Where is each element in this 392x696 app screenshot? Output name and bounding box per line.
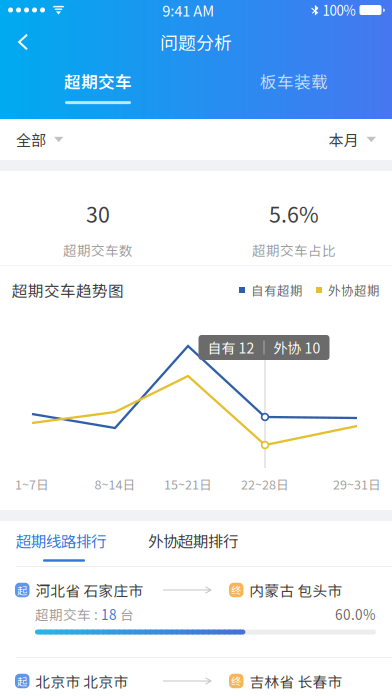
staticText: 22~28日: [241, 475, 289, 493]
staticText: 问题分析: [160, 29, 232, 55]
button[interactable]: 本月: [314, 119, 392, 160]
button[interactable]: 起: [0, 658, 392, 696]
staticText: 外协超期: [328, 281, 380, 299]
staticText: 起: [17, 674, 27, 688]
button[interactable]: Back: [0, 20, 46, 64]
staticText: 外协超期排行: [148, 529, 238, 552]
staticText: 吉林省 长春市: [249, 670, 342, 692]
staticText: 15~21日: [164, 475, 212, 493]
staticText: 起: [17, 583, 27, 597]
staticText: 超期交车: [64, 69, 132, 93]
staticText: 5.6%: [269, 198, 319, 229]
button[interactable]: 外协超期排行: [148, 521, 238, 566]
staticText: 终: [231, 583, 241, 597]
staticText: :: [91, 604, 101, 624]
button[interactable]: 板车装载: [196, 64, 392, 119]
button[interactable]: 超期线路排行: [16, 521, 106, 566]
staticText: 外协 10: [273, 337, 320, 358]
staticText: 超期交车数: [63, 240, 133, 260]
staticText: 板车装载: [260, 69, 328, 93]
staticText: 自有 12: [207, 337, 254, 358]
staticText: 河北省 石家庄市: [35, 579, 143, 601]
staticText: 超期线路排行: [16, 529, 106, 552]
button[interactable]: 全部: [0, 119, 77, 160]
staticText: 全部: [16, 129, 46, 150]
staticText: 29~31日: [333, 475, 381, 493]
staticText: 超期交车: [35, 604, 91, 624]
button[interactable]: 超期交车: [0, 64, 196, 119]
staticText: 终: [231, 674, 241, 688]
staticText: 30: [86, 198, 110, 229]
staticText: 8~14日: [94, 475, 135, 493]
staticText: 100%: [322, 0, 355, 20]
staticText: 本月: [328, 129, 358, 150]
staticText: 超期交车趋势图: [12, 279, 124, 301]
staticText: 超期交车占比: [252, 240, 336, 260]
staticText: 内蒙古 包头市: [249, 579, 342, 601]
staticText: 1~7日: [15, 475, 49, 493]
staticText: 9:41 AM: [162, 0, 214, 21]
staticText: 北京市 北京市: [35, 670, 128, 692]
staticText: 自有超期: [251, 281, 303, 299]
staticText: 台: [117, 604, 134, 624]
staticText: 60.0%: [335, 604, 376, 624]
button[interactable]: 起: [0, 567, 392, 657]
staticText: 18: [101, 604, 117, 624]
